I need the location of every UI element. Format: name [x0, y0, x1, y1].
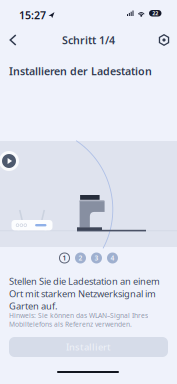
staticText: Stellen Sie die Ladestation an einem Ort… — [9, 275, 160, 312]
staticText: Schritt 1/4 — [62, 33, 115, 47]
button[interactable]: Installiert — [9, 337, 168, 357]
staticText: Hinweis: Sie können das WLAN–Signal Ihre… — [9, 311, 148, 329]
button[interactable]: Play video — [0, 141, 22, 171]
button[interactable]: 3 — [91, 252, 102, 263]
staticText: Installieren der Ladestation — [9, 64, 152, 78]
button[interactable]: 2 — [75, 252, 86, 263]
staticText: 3 — [94, 254, 98, 262]
staticText: 1 — [62, 254, 66, 262]
staticText: 2 — [78, 254, 82, 262]
staticText: Installiert — [66, 341, 111, 353]
button[interactable]: Back — [0, 28, 26, 52]
staticText: 22 — [152, 10, 158, 17]
button[interactable]: 1 — [59, 252, 70, 263]
staticText: 15:27 — [19, 8, 46, 22]
staticText: 4 — [110, 254, 114, 262]
button[interactable]: Settings — [151, 28, 177, 52]
button[interactable]: 4 — [107, 252, 118, 263]
